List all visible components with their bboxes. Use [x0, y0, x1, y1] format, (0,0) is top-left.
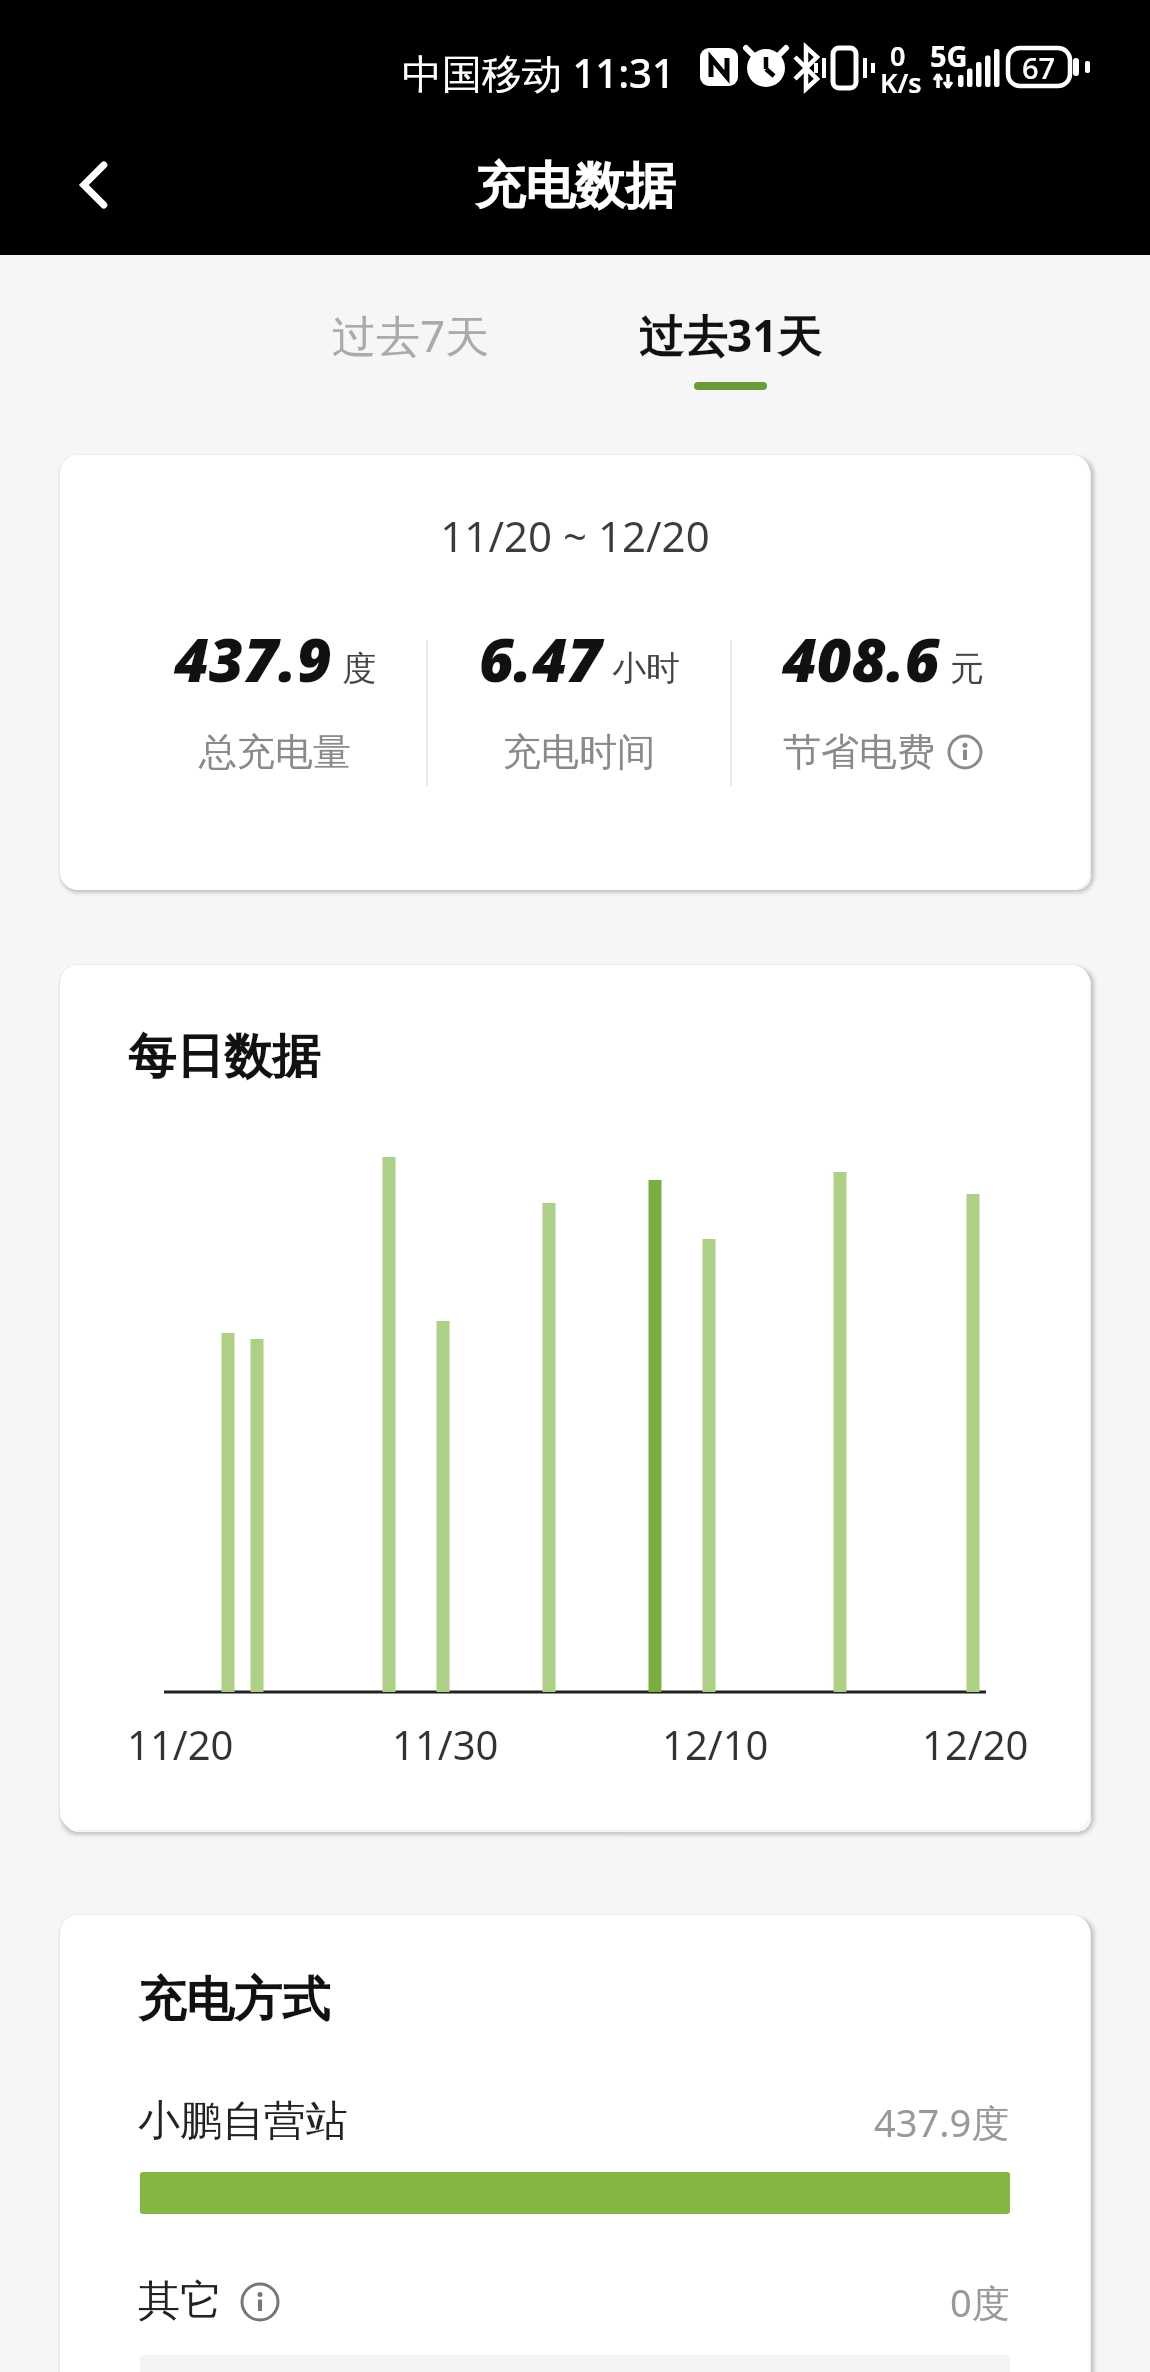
- staticText: 12/20: [922, 1717, 1029, 1771]
- staticText: 12/10: [662, 1717, 769, 1771]
- staticText: 节省电费: [783, 728, 935, 776]
- button[interactable]: 过去7天: [251, 290, 571, 380]
- staticText: 0度: [950, 2276, 1010, 2328]
- staticText: 度: [342, 647, 376, 690]
- staticText: 过去7天: [332, 305, 490, 365]
- staticText: 11/20 ~ 12/20: [60, 507, 1090, 564]
- staticText: 小时: [612, 647, 680, 690]
- staticText: 其它: [138, 2275, 222, 2328]
- button[interactable]: [240, 2282, 280, 2322]
- staticText: 5G: [930, 36, 968, 75]
- staticText: 每日数据: [128, 1027, 320, 1087]
- staticText: 0: [890, 37, 906, 74]
- staticText: 11/20: [127, 1717, 234, 1771]
- staticText: 408.6: [782, 618, 940, 700]
- staticText: K/s: [880, 64, 922, 101]
- staticText: 充电时间: [503, 728, 655, 776]
- staticText: 总充电量: [199, 728, 351, 776]
- staticText: 小鹏自营站: [138, 2095, 348, 2148]
- button[interactable]: 过去31天: [570, 290, 890, 380]
- staticText: 充电数据: [0, 155, 1150, 218]
- staticText: 437.9: [174, 618, 332, 700]
- button[interactable]: [947, 734, 983, 770]
- staticText: 过去31天: [639, 305, 822, 365]
- button[interactable]: [50, 140, 140, 230]
- staticText: 充电方式: [138, 1970, 330, 2030]
- staticText: 中国移动 11:31: [402, 45, 675, 100]
- staticText: 67: [1022, 48, 1056, 86]
- staticText: 元: [950, 647, 984, 690]
- staticText: 437.9度: [874, 2096, 1010, 2148]
- staticText: 11/30: [392, 1717, 499, 1771]
- staticText: 6.47: [479, 618, 602, 700]
